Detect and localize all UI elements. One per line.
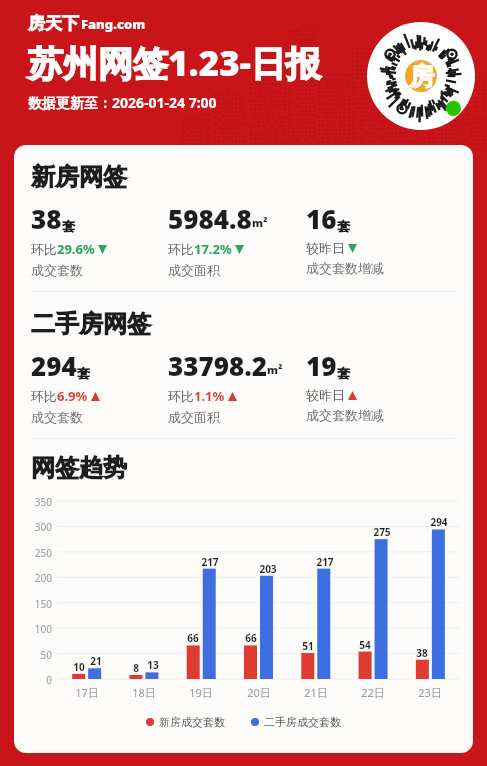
staticText: 51 — [297, 639, 319, 653]
button[interactable]: 二手房成交套数 — [251, 715, 341, 729]
staticText: 环比 — [168, 388, 194, 404]
staticText: 成交套数 — [31, 409, 83, 425]
staticText: 17.2% — [194, 240, 232, 258]
staticText: 16 — [306, 201, 337, 236]
staticText: 套 — [337, 365, 350, 381]
staticText: 成交面积 — [168, 409, 220, 425]
button[interactable]: 294 — [31, 348, 168, 425]
staticText: 10 — [68, 660, 90, 674]
staticText: 66 — [182, 631, 204, 645]
staticText: 网签趋势 — [31, 453, 127, 483]
staticText: 0 — [16, 673, 52, 687]
staticText: 二手房网签 — [31, 309, 151, 339]
staticText: 50 — [16, 648, 52, 662]
staticText: 成交套数增减 — [306, 407, 384, 423]
staticText: 成交面积 — [168, 262, 220, 278]
button[interactable]: 33798.2 — [168, 348, 306, 425]
staticText: 203 — [256, 562, 280, 576]
staticText: Fang.com — [81, 15, 146, 33]
staticText: 套 — [62, 218, 75, 234]
staticText: 20日 — [240, 685, 278, 700]
staticText: 294 — [427, 515, 451, 529]
staticText: 新房成交套数 — [159, 715, 225, 729]
staticText: 275 — [370, 525, 394, 539]
staticText: 5984.8 — [168, 201, 252, 236]
staticText: 房天下 — [28, 13, 79, 34]
staticText: 数据更新至：2026-01-24 7:00 — [28, 93, 217, 112]
button[interactable]: 16 — [306, 201, 473, 276]
staticText: 150 — [16, 597, 52, 611]
staticText: 1.1% — [194, 387, 225, 405]
staticText: 6.9% — [57, 387, 88, 405]
staticText: 18日 — [125, 685, 163, 700]
staticText: 23日 — [411, 685, 449, 700]
staticText: 套 — [337, 218, 350, 234]
staticText: 54 — [354, 638, 376, 652]
staticText: 13 — [141, 658, 165, 672]
staticText: 房 — [409, 61, 434, 92]
staticText: 较昨日 — [306, 240, 345, 256]
staticText: 新房网签 — [31, 162, 127, 192]
staticText: 8 — [125, 661, 147, 675]
staticText: 21 — [84, 654, 108, 668]
staticText: 19日 — [182, 685, 220, 700]
staticText: 环比 — [31, 241, 57, 257]
staticText: 294 — [31, 348, 77, 383]
staticText: 成交套数增减 — [306, 260, 384, 276]
staticText: 17日 — [68, 685, 106, 700]
staticText: 300 — [16, 520, 52, 534]
staticText: 环比 — [31, 388, 57, 404]
staticText: 22日 — [354, 685, 392, 700]
staticText: 29.6% — [57, 240, 95, 258]
staticText: m² — [267, 362, 283, 377]
staticText: 二手房成交套数 — [264, 715, 341, 729]
staticText: 38 — [411, 646, 433, 660]
staticText: 19 — [306, 348, 337, 383]
button[interactable]: 5984.8 — [168, 201, 306, 278]
staticText: 38 — [31, 201, 62, 236]
staticText: m² — [252, 215, 268, 230]
button[interactable]: 新房成交套数 — [146, 715, 225, 729]
staticText: 苏州网签1.23-日报 — [28, 39, 321, 87]
staticText: 较昨日 — [306, 387, 345, 403]
staticText: 250 — [16, 546, 52, 560]
staticText: 100 — [16, 622, 52, 636]
staticText: 33798.2 — [168, 348, 267, 383]
staticText: 成交套数 — [31, 262, 83, 278]
staticText: 200 — [16, 571, 52, 585]
staticText: 21日 — [297, 685, 335, 700]
staticText: 217 — [313, 555, 337, 569]
button[interactable]: 小程序二维码 — [367, 22, 475, 130]
staticText: 66 — [240, 631, 262, 645]
staticText: 环比 — [168, 241, 194, 257]
staticText: 217 — [198, 555, 222, 569]
staticText: 套 — [77, 365, 90, 381]
button[interactable]: 38 — [31, 201, 168, 278]
button[interactable]: 房天下 — [28, 13, 146, 34]
staticText: 350 — [16, 495, 52, 509]
button[interactable]: 19 — [306, 348, 473, 423]
